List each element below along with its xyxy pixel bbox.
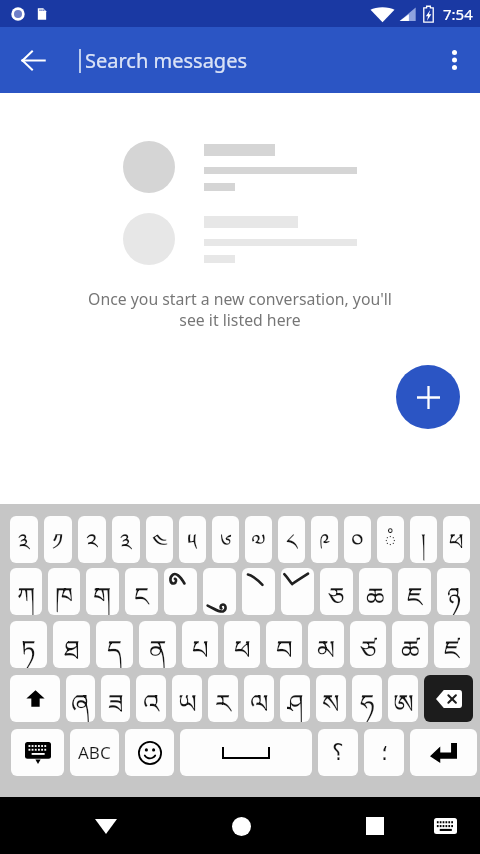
button[interactable]: Shift [10, 675, 60, 722]
button[interactable]: ས [316, 675, 346, 722]
staticText: ཕ [234, 621, 251, 668]
button[interactable]: ༥ [179, 516, 206, 563]
staticText: ཞ [71, 675, 90, 722]
button[interactable]: ༧ [245, 516, 272, 563]
button[interactable]: ༣ [112, 516, 140, 563]
button[interactable]: ༨ [278, 516, 305, 563]
button[interactable]: Home [217, 802, 265, 850]
staticText: ཁ [55, 568, 74, 615]
button[interactable]: ཧ [352, 675, 382, 722]
button[interactable]: ཙ [350, 621, 386, 668]
button[interactable]: ༦ [212, 516, 239, 563]
button[interactable]: ༢ [78, 516, 106, 563]
button[interactable] [281, 568, 314, 615]
staticText: ༥ [187, 516, 198, 563]
button[interactable]: Recents [351, 802, 399, 850]
button[interactable]: ༤ [146, 516, 173, 563]
button[interactable]: ལ [244, 675, 274, 722]
staticText: མ [317, 621, 336, 668]
staticText: ས [322, 675, 340, 722]
button[interactable]: ཡ [172, 675, 202, 722]
button[interactable]: ཕ [443, 516, 470, 563]
button[interactable]: ཅ [320, 568, 353, 615]
staticText: ཇ [407, 568, 423, 615]
staticText: Search messages [85, 47, 248, 74]
button[interactable]: ད [96, 621, 133, 668]
button[interactable]: ཀ [10, 568, 42, 615]
button[interactable]: Enter [410, 729, 477, 776]
button[interactable]: Emoji [125, 729, 174, 776]
button[interactable]: ཞ [66, 675, 95, 722]
staticText: ཡ [178, 675, 197, 722]
button[interactable]: ། [410, 516, 437, 563]
button[interactable]: ཉ [437, 568, 470, 615]
button[interactable]: ཛ [434, 621, 470, 668]
staticText: ར [215, 675, 232, 722]
button[interactable]: ཆ [359, 568, 392, 615]
button[interactable]: Back [82, 802, 130, 850]
staticText: ༠ [351, 516, 364, 563]
staticText: ༢ [86, 516, 98, 563]
button[interactable]: བ [266, 621, 302, 668]
button[interactable]: ༣ [10, 516, 38, 563]
button[interactable]: More options [430, 36, 478, 84]
staticText: ཾ [384, 516, 397, 563]
staticText: Once you start a new conversation, you'l… [0, 288, 480, 330]
button[interactable]: མ [308, 621, 344, 668]
staticText: ན [149, 621, 167, 668]
staticText: འ [143, 675, 160, 722]
button[interactable] [242, 568, 275, 615]
button[interactable]: པ [182, 621, 218, 668]
staticText: ABC [78, 741, 111, 764]
staticText: ؟ [332, 740, 344, 766]
button[interactable] [203, 568, 236, 615]
button[interactable]: ༩ [311, 516, 338, 563]
button[interactable]: ག [86, 568, 119, 615]
button[interactable]: Back [9, 36, 57, 84]
button[interactable]: Space [180, 729, 312, 776]
button[interactable]: Backspace [424, 675, 473, 722]
staticText: ལ [250, 675, 269, 722]
button[interactable]: འ [136, 675, 166, 722]
button[interactable]: Start new conversation [396, 365, 460, 429]
staticText: ང [134, 568, 150, 615]
staticText: ༦ [220, 516, 232, 563]
staticText: ཙ [360, 621, 377, 668]
staticText: ཕ [449, 516, 464, 563]
button[interactable]: ༡ [44, 516, 72, 563]
button[interactable]: Switch keyboard [421, 802, 469, 850]
button[interactable]: ཚ [392, 621, 428, 668]
button[interactable]: ཁ [48, 568, 80, 615]
staticText: ། [421, 516, 427, 563]
button[interactable]: ABC [70, 729, 119, 776]
staticText: ཀ [17, 568, 36, 615]
button[interactable]: ؛ [364, 729, 404, 776]
staticText: ཧ [360, 675, 375, 722]
button[interactable]: ཨ [388, 675, 418, 722]
button[interactable]: ར [208, 675, 238, 722]
button[interactable]: ؟ [318, 729, 358, 776]
button[interactable]: ཕ [224, 621, 260, 668]
staticText: ཏ [21, 621, 36, 668]
button[interactable]: ༠ [344, 516, 371, 563]
button[interactable]: ཇ [398, 568, 431, 615]
button[interactable]: ཤ [280, 675, 310, 722]
staticText: བ [276, 621, 293, 668]
staticText: ༣ [18, 516, 30, 563]
button[interactable]: ཐ [53, 621, 90, 668]
button[interactable]: ཏ [10, 621, 47, 668]
button[interactable]: ང [125, 568, 158, 615]
staticText: ༨ [286, 516, 298, 563]
button[interactable]: ཟ [101, 675, 130, 722]
staticText: 7:54 [443, 4, 473, 24]
staticText: ཚ [401, 621, 420, 668]
staticText: པ [192, 621, 209, 668]
button[interactable]: Change keyboard [11, 729, 64, 776]
staticText: ཟ [108, 675, 124, 722]
button[interactable] [164, 568, 197, 615]
staticText: ད [107, 621, 123, 668]
staticText: ཐ [64, 621, 80, 668]
staticText: ཉ [447, 568, 461, 615]
button[interactable]: ན [139, 621, 176, 668]
button[interactable]: ཾ [377, 516, 404, 563]
